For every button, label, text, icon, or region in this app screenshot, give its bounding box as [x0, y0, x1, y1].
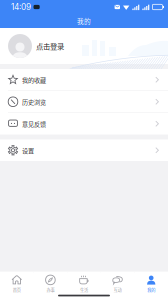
staticText: 意见反馈: [22, 119, 46, 128]
staticText: 设置: [22, 146, 34, 155]
staticText: 我的: [147, 287, 155, 293]
staticText: 互动: [114, 287, 122, 293]
button[interactable]: 我的收藏: [0, 69, 168, 90]
button[interactable]: 我的: [134, 272, 168, 292]
staticText: 我的: [77, 16, 91, 26]
staticText: 点击登录: [36, 41, 64, 51]
button[interactable]: 设置: [0, 139, 168, 161]
button[interactable]: 历史浏览: [0, 91, 168, 112]
staticText: 14:09: [11, 2, 31, 12]
staticText: 历史浏览: [22, 97, 46, 106]
staticText: 办事: [46, 287, 54, 293]
button[interactable]: 生活: [67, 272, 101, 292]
button[interactable]: 互动: [101, 272, 134, 292]
staticText: 首页: [13, 287, 21, 293]
button[interactable]: 点击登录: [0, 28, 168, 64]
button[interactable]: 办事: [34, 272, 67, 292]
button[interactable]: 意见反馈: [0, 113, 168, 134]
staticText: 我的收藏: [22, 75, 46, 84]
button[interactable]: 首页: [0, 272, 34, 292]
staticText: 生活: [80, 287, 88, 293]
